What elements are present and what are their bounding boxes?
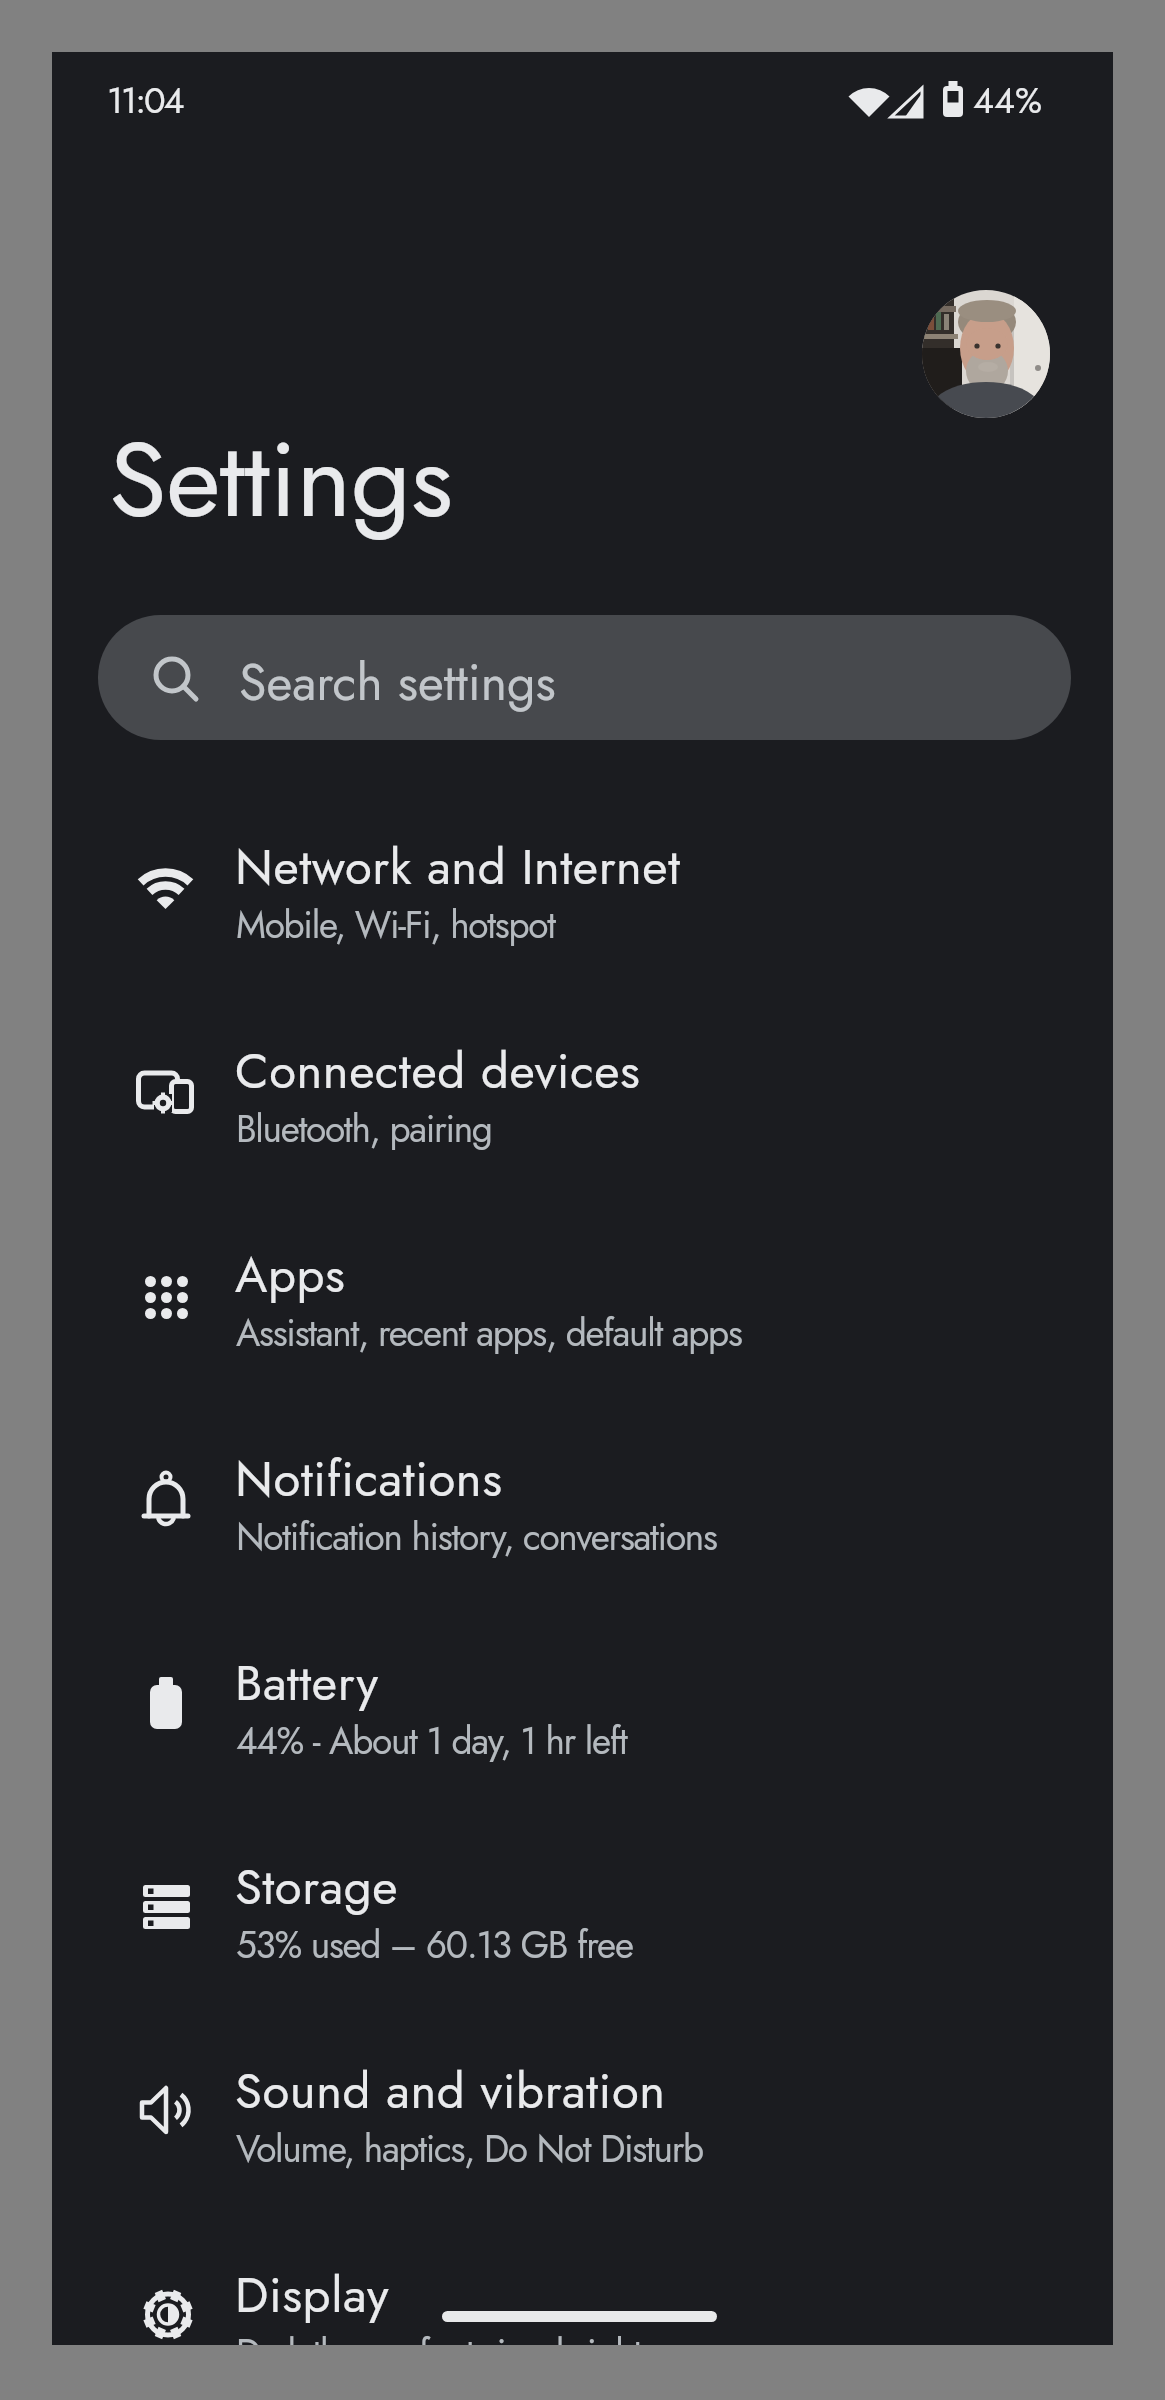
staticText: Network and Internet — [235, 832, 681, 903]
staticText: Settings — [109, 404, 453, 556]
staticText: 53% used – 60.13 GB free — [236, 1918, 633, 1971]
button[interactable]: Display — [52, 2219, 1113, 2345]
staticText: Volume, haptics, Do Not Disturb — [236, 2122, 703, 2175]
button[interactable]: Notifications — [52, 1403, 1113, 1607]
staticText: Bluetooth, pairing — [236, 1102, 492, 1155]
staticText: Dark theme, font size, brightness — [236, 2326, 705, 2345]
staticText: Sound and vibration — [235, 2056, 666, 2127]
staticText: Connected devices — [235, 1036, 641, 1107]
staticText: Apps — [235, 1240, 346, 1311]
staticText: 44% - About 1 day, 1 hr left — [236, 1714, 627, 1767]
button[interactable]: Connected devices — [52, 995, 1113, 1199]
staticText: 44% — [973, 74, 1043, 126]
staticText: Notification history, conversations — [236, 1510, 717, 1563]
button[interactable] — [922, 290, 1050, 418]
staticText: Battery — [235, 1648, 379, 1719]
button[interactable]: Storage — [52, 1811, 1113, 2015]
staticText: Assistant, recent apps, default apps — [236, 1306, 742, 1359]
staticText: Display — [235, 2260, 390, 2331]
button[interactable]: Battery — [52, 1607, 1113, 1811]
staticText: Storage — [235, 1852, 399, 1923]
button[interactable]: Network and Internet — [52, 791, 1113, 995]
button[interactable]: Apps — [52, 1199, 1113, 1403]
button[interactable]: Search settings — [98, 615, 1071, 740]
staticText: Search settings — [239, 646, 556, 718]
button[interactable]: Sound and vibration — [52, 2015, 1113, 2219]
staticText: Mobile, Wi-Fi, hotspot — [236, 898, 555, 951]
staticText: 11:04 — [107, 74, 183, 126]
staticText: Notifications — [235, 1444, 503, 1515]
